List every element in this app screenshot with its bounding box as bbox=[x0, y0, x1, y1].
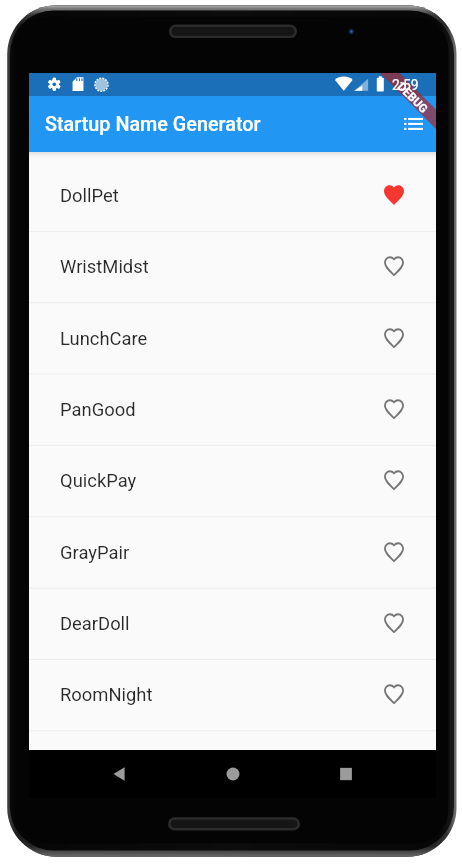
staticText: DearDoll bbox=[60, 613, 382, 635]
staticText: GrayPair bbox=[60, 542, 382, 564]
staticText: Startup Name Generator bbox=[45, 113, 261, 136]
staticText: LunchCare bbox=[60, 328, 382, 350]
button[interactable]: WristMidst bbox=[29, 231, 436, 302]
button[interactable]: Save GrayPair bbox=[382, 541, 406, 565]
button[interactable]: DearDoll bbox=[29, 588, 436, 659]
button[interactable]: Save WristMidst bbox=[382, 255, 406, 279]
button[interactable]: LunchCare bbox=[29, 303, 436, 374]
button[interactable]: Recent apps bbox=[322, 750, 370, 798]
button[interactable]: Remove DollPet from saved bbox=[382, 184, 406, 208]
staticText: QuickPay bbox=[60, 470, 382, 492]
button[interactable]: Back bbox=[95, 750, 143, 798]
button[interactable]: PanGood bbox=[29, 374, 436, 445]
button[interactable]: RoomNight bbox=[29, 659, 436, 730]
button[interactable]: Save DearDoll bbox=[382, 612, 406, 636]
button[interactable]: GrayPair bbox=[29, 517, 436, 588]
staticText: RoomNight bbox=[60, 684, 382, 706]
button[interactable]: Saved suggestions bbox=[389, 100, 437, 148]
button[interactable]: Save QuickPay bbox=[382, 469, 406, 493]
button[interactable]: Save RoomNight bbox=[382, 683, 406, 707]
button[interactable]: Home bbox=[209, 750, 257, 798]
staticText: WristMidst bbox=[60, 256, 382, 278]
staticText: DollPet bbox=[60, 185, 382, 207]
button[interactable]: QuickPay bbox=[29, 445, 436, 516]
staticText: PanGood bbox=[60, 399, 382, 421]
button[interactable]: DollPet bbox=[29, 160, 436, 231]
button[interactable]: Save PanGood bbox=[382, 398, 406, 422]
button[interactable]: Save LunchCare bbox=[382, 327, 406, 351]
staticText: 2:59 bbox=[392, 77, 419, 93]
staticText: DEBUG bbox=[395, 80, 431, 116]
